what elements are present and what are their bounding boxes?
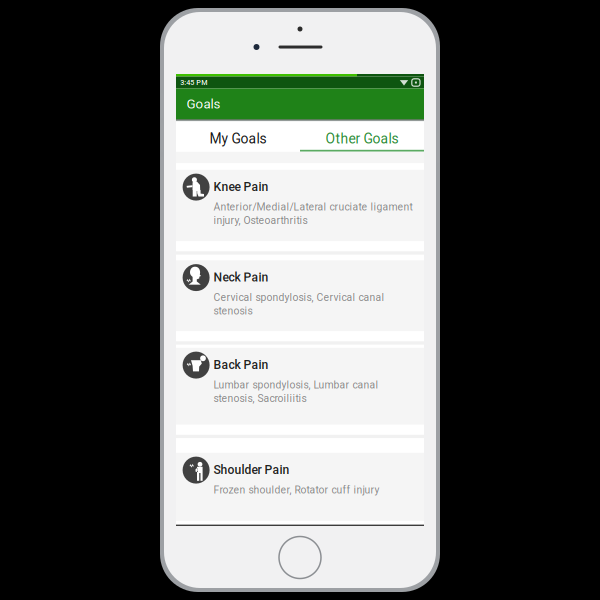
staticText: injury, Osteoarthritis	[213, 214, 307, 226]
staticText: Lumbar spondylosis, Lumbar canal	[213, 379, 378, 391]
staticText: Goals	[187, 96, 221, 112]
staticText: Anterior/Medial/Lateral cruciate ligamen…	[213, 201, 412, 213]
staticText: stenosis, Sacroiliitis	[213, 392, 306, 404]
staticText: Cervical spondylosis, Cervical canal	[213, 291, 384, 303]
staticText: Back Pain	[213, 358, 268, 372]
staticText: Knee Pain	[213, 180, 268, 194]
button[interactable]: Back Pain	[176, 348, 424, 425]
button[interactable]: Shoulder Pain	[176, 453, 424, 521]
staticText: 3:45 PM	[180, 78, 207, 87]
staticText: Neck Pain	[213, 270, 268, 284]
button[interactable]: Neck Pain	[176, 260, 424, 331]
button[interactable]: Knee Pain	[176, 170, 424, 241]
button[interactable]: Other Goals	[300, 121, 424, 150]
staticText: stenosis	[213, 305, 252, 317]
staticText: My Goals	[209, 131, 266, 147]
staticText: Frozen shoulder, Rotator cuff injury	[213, 484, 379, 496]
staticText: Other Goals	[325, 131, 398, 147]
button[interactable]: My Goals	[176, 121, 300, 150]
staticText: Shoulder Pain	[213, 463, 289, 477]
